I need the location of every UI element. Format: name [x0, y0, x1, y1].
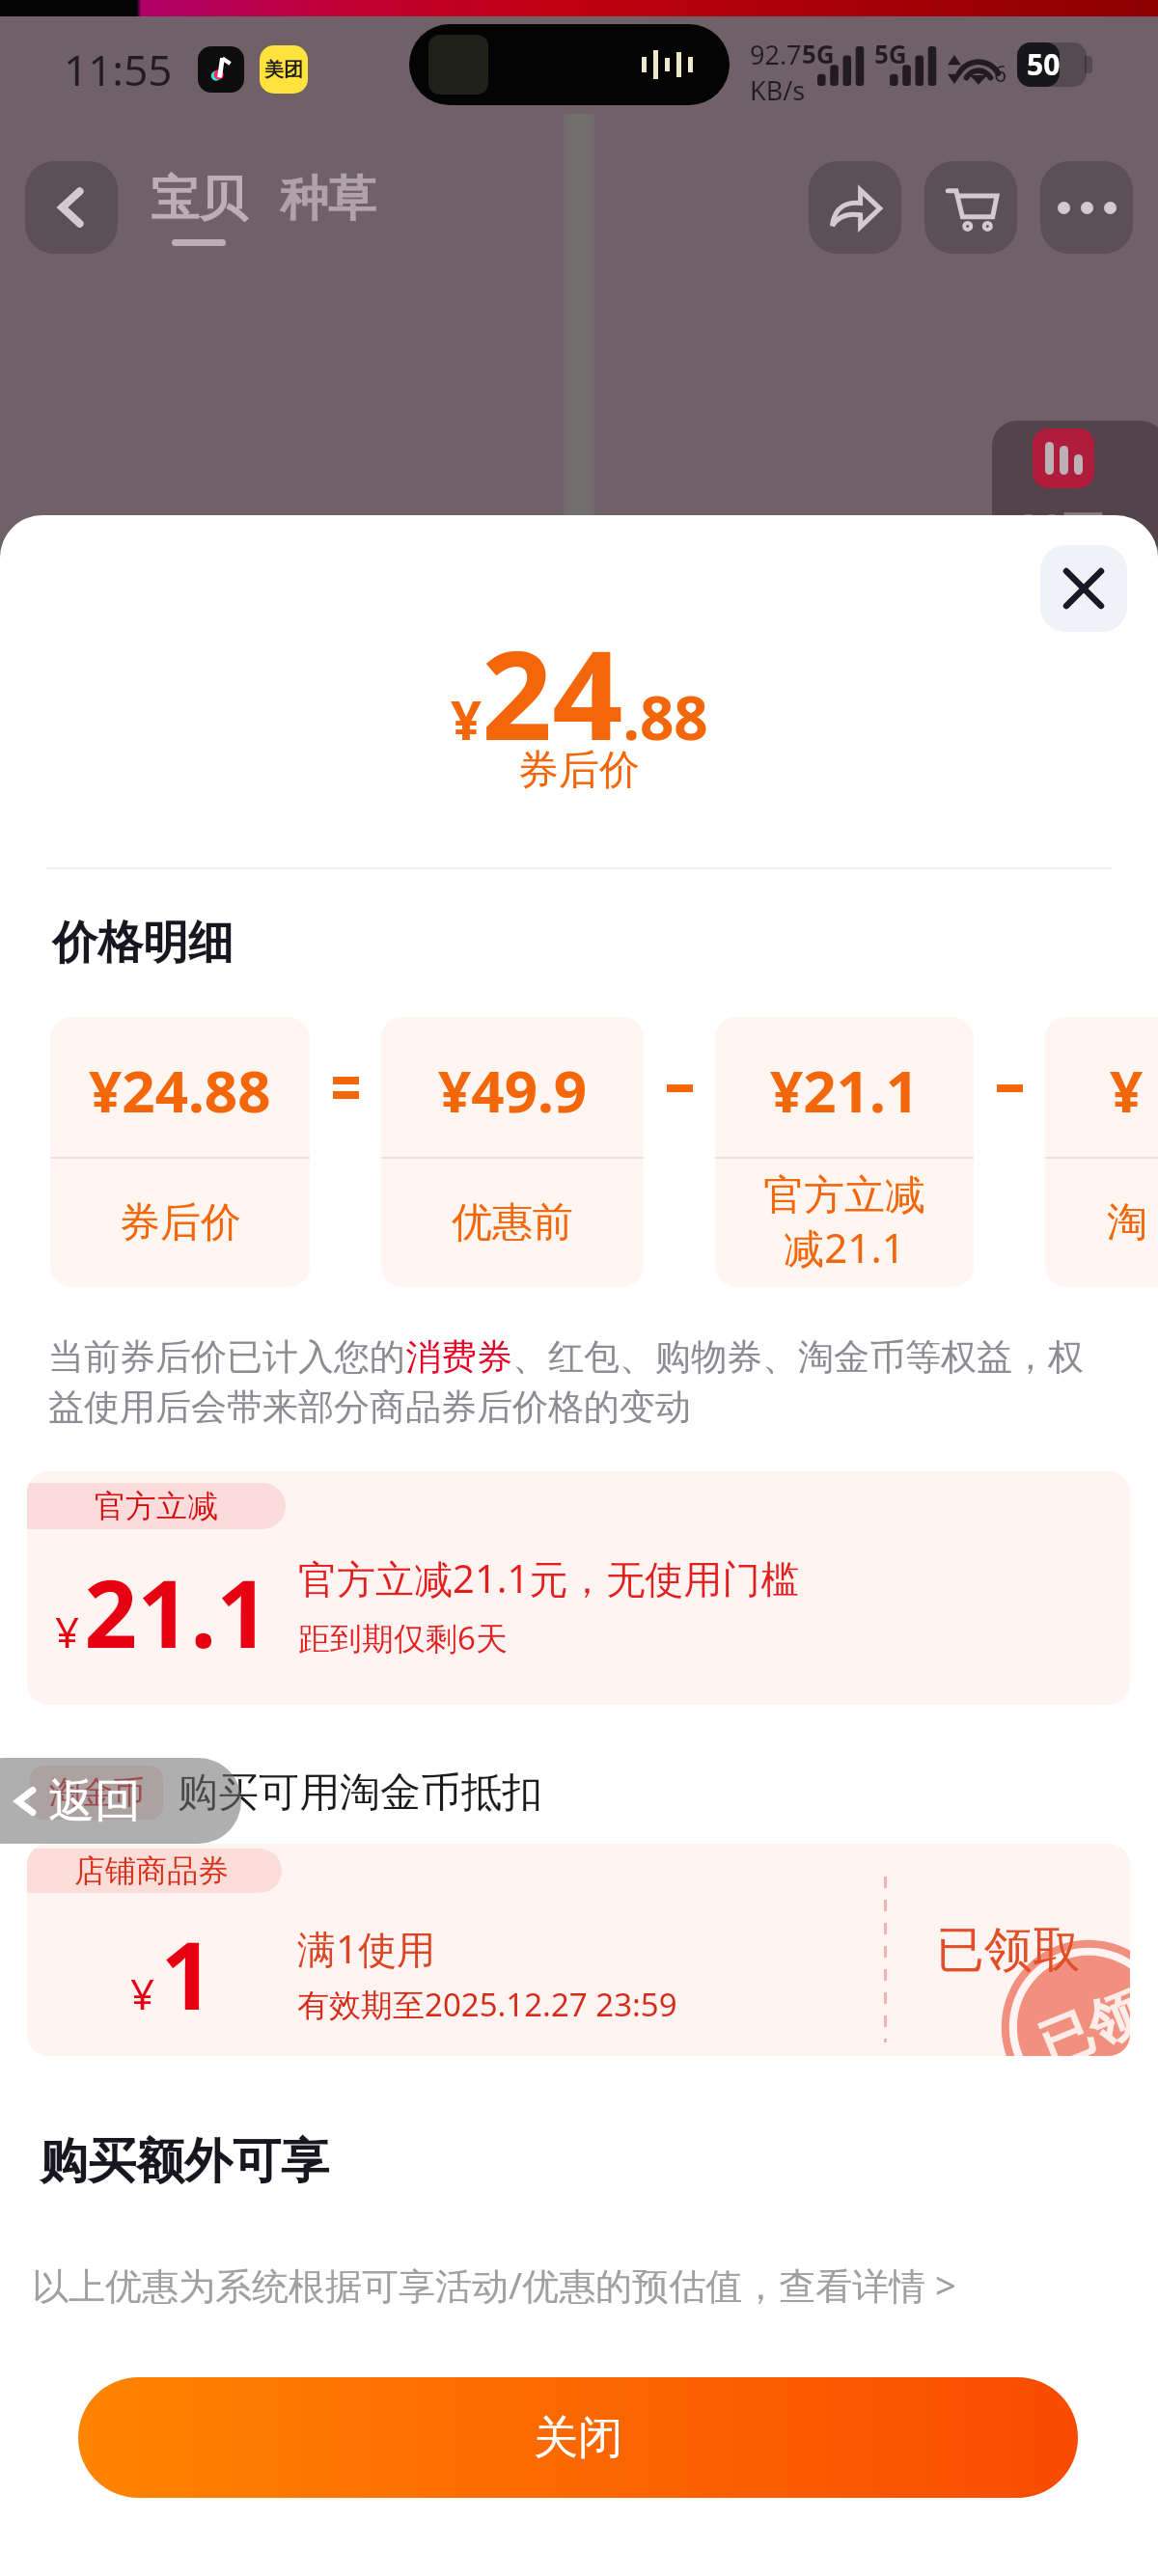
staticText: 优惠前 — [452, 1197, 573, 1248]
staticText: 返回 — [48, 1772, 141, 1830]
button[interactable]: Close — [1040, 545, 1127, 632]
staticText: 券后价 — [120, 1197, 241, 1248]
button[interactable]: 官方立减 — [27, 1471, 1130, 1705]
staticText: 官方立减21.1元，无使用门槛 — [298, 1551, 800, 1604]
staticText: 美团 — [264, 58, 303, 82]
staticText: 已领 — [1030, 1979, 1130, 2056]
staticText: ¥ — [1110, 1051, 1144, 1130]
staticText: ¥ 21.1 — [55, 1548, 270, 1675]
button[interactable]: Back — [25, 161, 118, 254]
staticText: 距到期仅剩6天 — [298, 1616, 508, 1659]
staticText: 店铺商品券 — [74, 1851, 229, 1890]
staticText: ¥24.88 — [451, 608, 708, 776]
staticText: ¥24.88 — [89, 1051, 271, 1130]
staticText: 种草 — [280, 169, 376, 230]
staticText: 50 — [1027, 44, 1061, 84]
staticText: 购买可用淘金币抵扣 — [178, 1768, 542, 1819]
staticText: KB/s — [750, 72, 806, 108]
button[interactable]: More — [1040, 161, 1133, 254]
staticText: 券后价 — [0, 745, 1158, 796]
staticText: 官方立减 减21.1 — [763, 1170, 925, 1275]
staticText: 宝贝 — [151, 169, 247, 230]
staticText: 有效期至2025.12.27 23:59 — [297, 1983, 677, 2026]
staticText: 满1使用 — [297, 1922, 435, 1975]
staticText: ¥ 1 — [130, 1910, 214, 2037]
staticText: 5G — [874, 37, 907, 70]
staticText: ¥21.1 — [770, 1051, 920, 1130]
button[interactable]: Share — [809, 161, 901, 254]
button[interactable]: 返回 — [0, 1758, 241, 1844]
button[interactable]: 已领 — [27, 1844, 1130, 2056]
staticText: ¥49.9 — [438, 1051, 588, 1130]
staticText: 淘金币 — [49, 1772, 145, 1813]
staticText: 已领取 — [936, 1920, 1081, 1981]
button[interactable]: Cart — [924, 161, 1017, 254]
staticText: 6 — [994, 58, 1007, 88]
button[interactable]: 关闭 — [78, 2377, 1078, 2498]
staticText: 30万 — [1017, 500, 1105, 546]
staticText: 价格明细 — [52, 915, 234, 972]
staticText: 购买额外可享 — [40, 2131, 329, 2192]
staticText: 以上优惠为系统根据可享活动/优惠的预估值，查看详情 > — [32, 2260, 956, 2310]
staticText: 当前券后价已计入您的消费券、红包、购物券、淘金币等权益，权益使用后会带来部分商品… — [48, 1334, 1108, 1430]
staticText: 11:55 — [64, 41, 173, 98]
staticText: 淘 — [1107, 1197, 1147, 1248]
staticText: 5G — [802, 37, 835, 70]
staticText: 关闭 — [534, 2410, 622, 2466]
staticText: 官方立减 — [95, 1487, 218, 1525]
staticText: 92.7 — [750, 37, 802, 72]
